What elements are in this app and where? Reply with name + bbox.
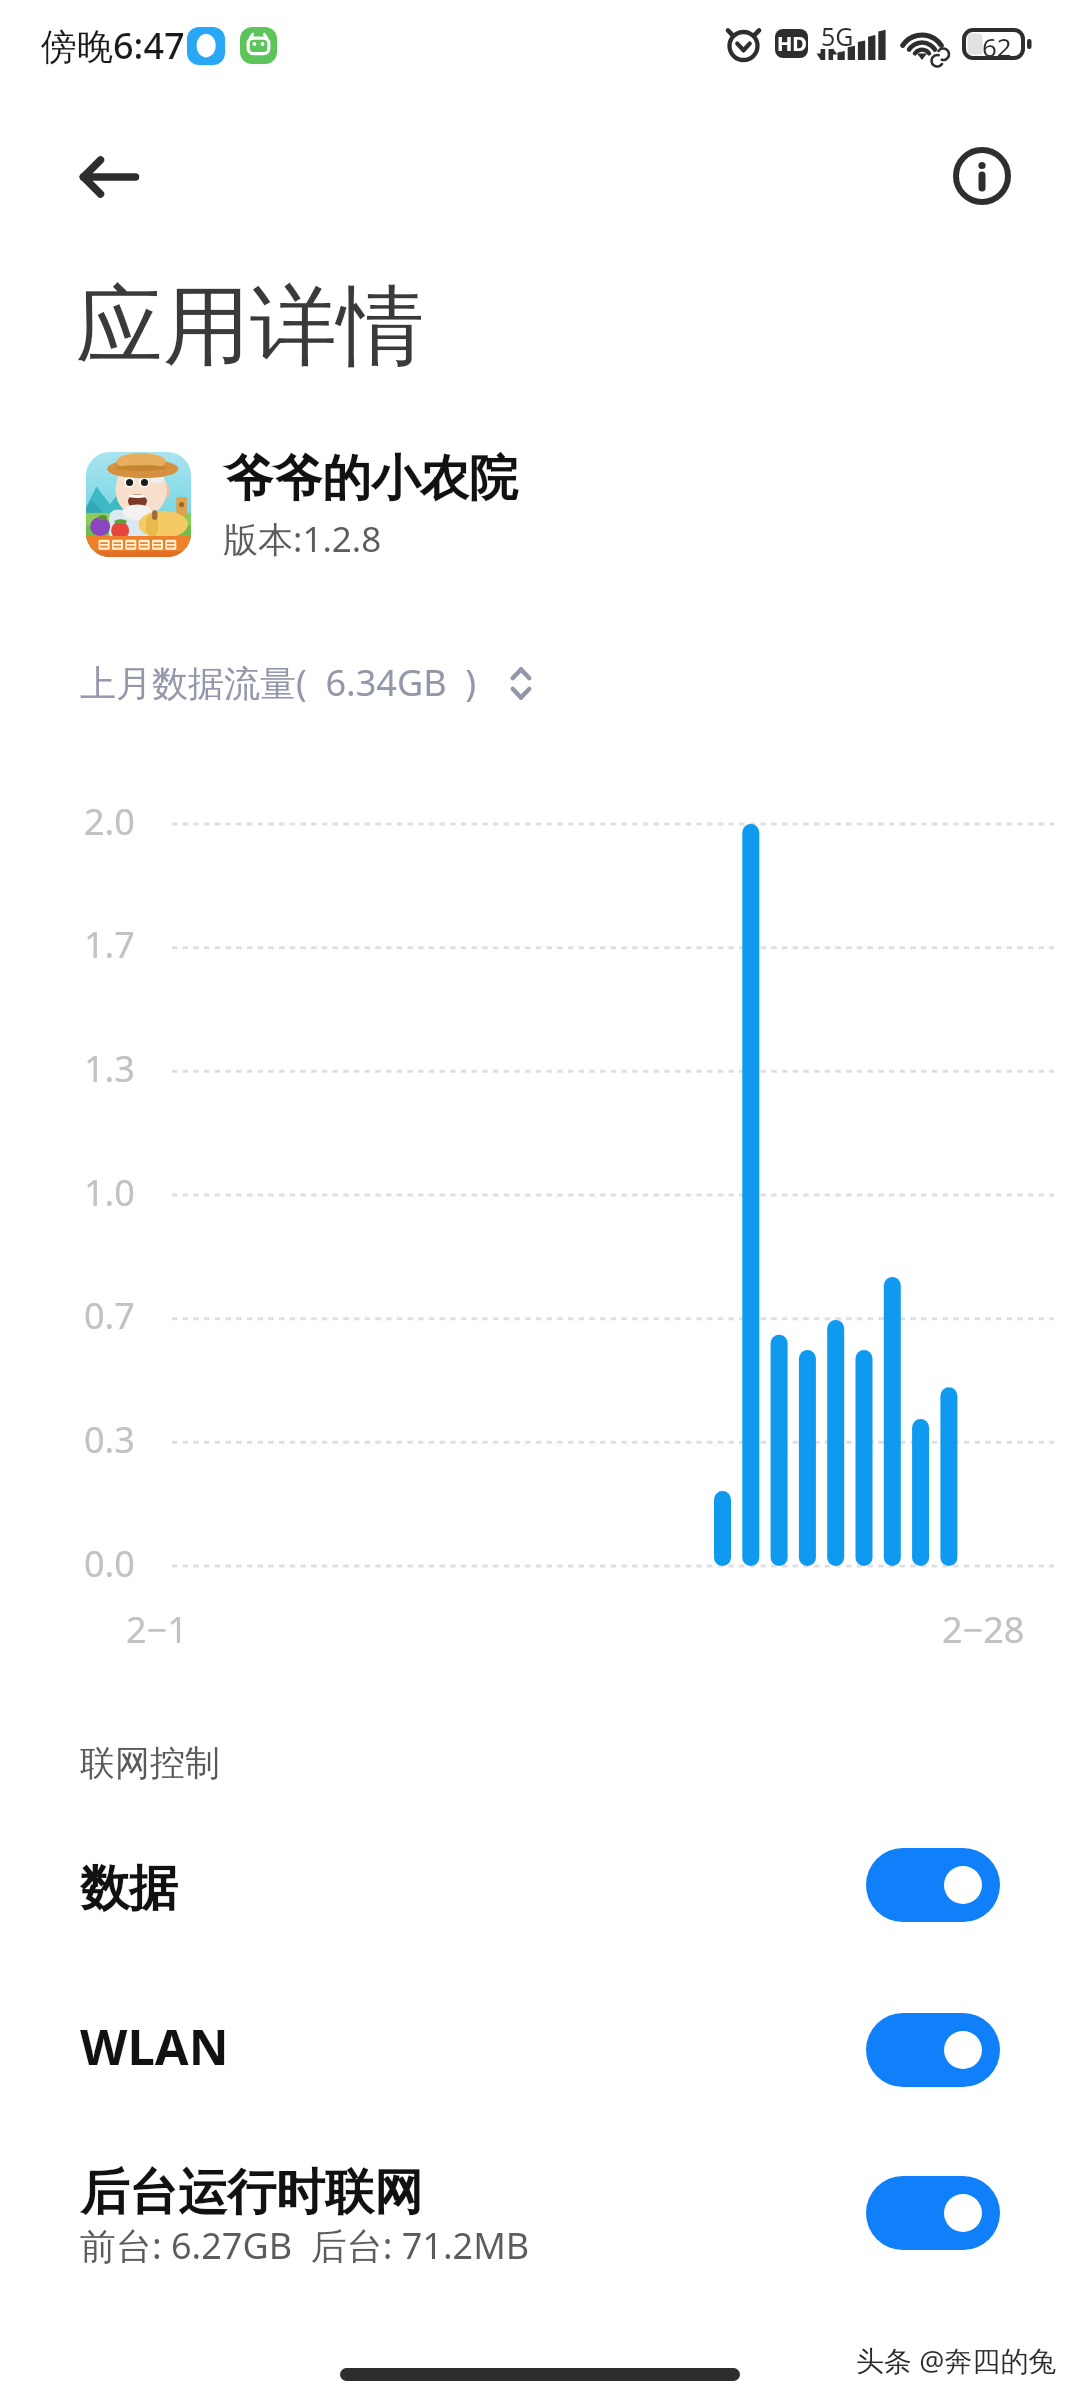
staticText: 后台运行时联网 bbox=[80, 2162, 423, 2224]
staticText: 上月数据流量( 6.34GB ) bbox=[80, 658, 477, 707]
staticText: 5G bbox=[821, 19, 854, 53]
staticText: 1.0 bbox=[84, 1168, 135, 1217]
staticText: 联网控制 bbox=[80, 1741, 220, 1785]
staticText: 1.3 bbox=[84, 1044, 135, 1093]
staticText: 应用详情 bbox=[76, 272, 424, 382]
staticText: 0.3 bbox=[84, 1415, 135, 1464]
button[interactable]: 后台运行时联网 bbox=[0, 2131, 1080, 2295]
button[interactable]: WLAN bbox=[0, 1968, 1080, 2132]
staticText: 0.0 bbox=[84, 1539, 135, 1588]
staticText: 1.7 bbox=[84, 920, 135, 969]
button[interactable]: 后台运行时联网 bbox=[866, 2176, 1000, 2250]
staticText: 前台: 6.27GB 后台: 71.2MB bbox=[80, 2221, 530, 2270]
staticText: 62 bbox=[982, 29, 1012, 64]
button[interactable]: 爷爷的小农院 bbox=[70, 440, 630, 570]
button[interactable]: WLAN bbox=[866, 2013, 1000, 2087]
staticText: 2−28 bbox=[942, 1605, 1025, 1654]
staticText: 版本:1.2.8 bbox=[223, 515, 382, 563]
button[interactable]: Info bbox=[948, 142, 1016, 210]
button[interactable]: 上月数据流量( 6.34GB ) bbox=[80, 657, 533, 707]
staticText: 傍晚6:47 bbox=[41, 21, 185, 70]
staticText: 2−1 bbox=[126, 1605, 188, 1654]
staticText: 数据 bbox=[80, 1858, 178, 1920]
button[interactable]: 数据 bbox=[866, 1848, 1000, 1922]
staticText: 爷爷的小农院 bbox=[224, 448, 518, 510]
button[interactable]: 数据 bbox=[0, 1803, 1080, 1967]
staticText: 头条 @奔四的兔 bbox=[856, 2341, 1057, 2379]
staticText: HD bbox=[777, 30, 807, 57]
button[interactable]: Back bbox=[56, 144, 146, 210]
staticText: WLAN bbox=[80, 2013, 229, 2080]
staticText: 0.7 bbox=[84, 1291, 135, 1340]
staticText: 2.0 bbox=[84, 797, 135, 846]
